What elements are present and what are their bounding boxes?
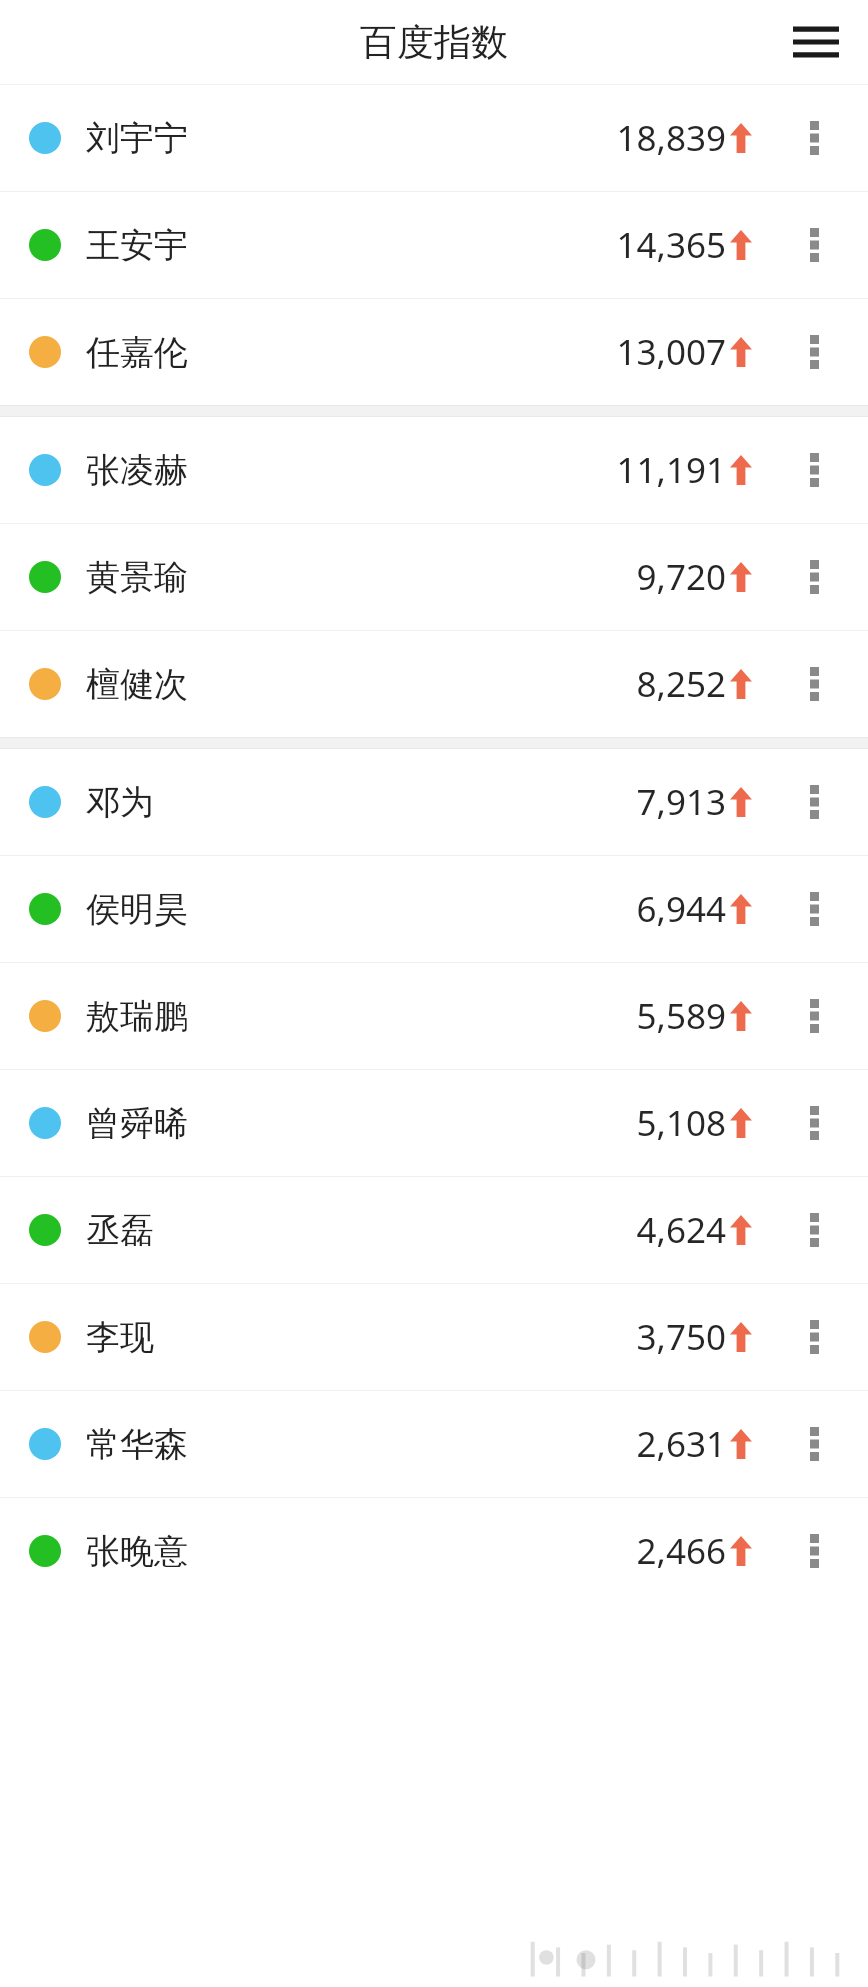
staticText: 2,631 (636, 1420, 726, 1468)
staticText: 丞磊 (86, 1209, 154, 1252)
button[interactable]: 常华森 (0, 1391, 868, 1497)
button[interactable]: More options (784, 973, 844, 1059)
button[interactable]: 刘宇宁 (0, 85, 868, 191)
button[interactable]: 任嘉伦 (0, 299, 868, 405)
button[interactable]: More options (784, 866, 844, 952)
staticText: 张凌赫 (86, 449, 188, 492)
button[interactable]: More options (784, 759, 844, 845)
button[interactable]: More options (784, 534, 844, 620)
staticText: 5,589 (636, 992, 726, 1040)
staticText: 18,839 (616, 114, 726, 162)
button[interactable]: 檀健次 (0, 631, 868, 737)
staticText: 11,191 (616, 446, 726, 494)
button[interactable]: More options (784, 1401, 844, 1487)
staticText: 7,913 (636, 778, 726, 826)
button[interactable]: More options (784, 95, 844, 181)
staticText: 5,108 (636, 1099, 726, 1147)
staticText: 8,252 (636, 660, 726, 708)
staticText: 13,007 (616, 328, 726, 376)
button[interactable]: More options (784, 1080, 844, 1166)
staticText: 14,365 (616, 221, 726, 269)
button[interactable]: 侯明昊 (0, 856, 868, 962)
staticText: 6,944 (636, 885, 726, 933)
button[interactable]: More options (784, 427, 844, 513)
staticText: 任嘉伦 (86, 331, 188, 374)
staticText: 刘宇宁 (86, 117, 188, 160)
staticText: 3,750 (636, 1313, 726, 1361)
staticText: 2,466 (636, 1527, 726, 1575)
staticText: 敖瑞鹏 (86, 995, 188, 1038)
staticText: 曾舜晞 (86, 1102, 188, 1145)
staticText: 常华森 (86, 1423, 188, 1466)
staticText: 9,720 (636, 553, 726, 601)
staticText: 黄景瑜 (86, 556, 188, 599)
button[interactable]: More options (784, 309, 844, 395)
button[interactable]: More options (784, 1187, 844, 1273)
button[interactable]: 王安宇 (0, 192, 868, 298)
button[interactable]: Menu (780, 6, 852, 78)
staticText: 张晚意 (86, 1530, 188, 1573)
staticText: 百度指数 (360, 19, 508, 66)
button[interactable]: 张晚意 (0, 1498, 868, 1604)
button[interactable]: More options (784, 1508, 844, 1594)
button[interactable]: 张凌赫 (0, 417, 868, 523)
staticText: 邓为 (86, 781, 154, 824)
staticText: 王安宇 (86, 224, 188, 267)
button[interactable]: 丞磊 (0, 1177, 868, 1283)
staticText: 侯明昊 (86, 888, 188, 931)
button[interactable]: 黄景瑜 (0, 524, 868, 630)
button[interactable]: 邓为 (0, 749, 868, 855)
staticText: 李现 (86, 1316, 154, 1359)
button[interactable]: More options (784, 202, 844, 288)
button[interactable]: 曾舜晞 (0, 1070, 868, 1176)
staticText: 4,624 (636, 1206, 726, 1254)
staticText: 檀健次 (86, 663, 188, 706)
button[interactable]: 敖瑞鹏 (0, 963, 868, 1069)
button[interactable]: 李现 (0, 1284, 868, 1390)
button[interactable]: More options (784, 641, 844, 727)
button[interactable]: More options (784, 1294, 844, 1380)
